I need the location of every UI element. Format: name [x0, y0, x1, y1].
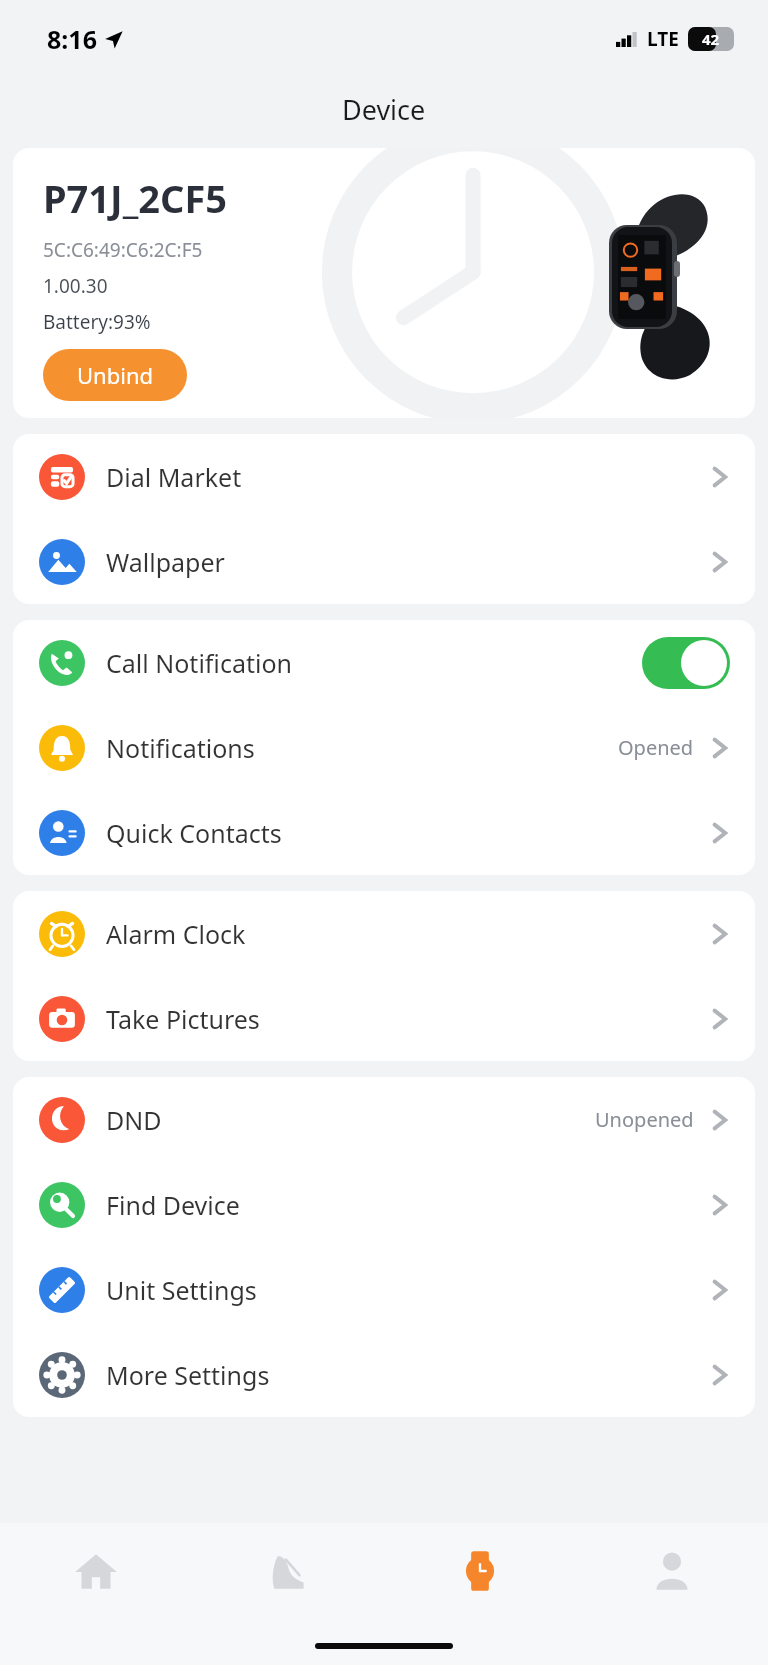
button[interactable]: Call Notification toggle	[642, 637, 730, 689]
button[interactable]: Profile	[576, 1523, 768, 1619]
button[interactable]: Take Pictures	[13, 976, 755, 1061]
button[interactable]: P71J_2CF5	[13, 148, 755, 418]
staticText: Alarm Clock	[106, 917, 246, 951]
staticText: Dial Market	[106, 460, 242, 494]
staticText: Notifications	[106, 731, 255, 765]
button[interactable]: Sport	[192, 1523, 384, 1619]
staticText: Take Pictures	[106, 1002, 260, 1036]
staticText: Battery:93%	[43, 309, 151, 335]
button[interactable]: Home	[0, 1523, 192, 1619]
staticText: Opened	[618, 734, 694, 761]
staticText: More Settings	[106, 1358, 270, 1392]
button[interactable]: More Settings	[13, 1332, 755, 1417]
staticText: Quick Contacts	[106, 816, 282, 850]
staticText: P71J_2CF5	[43, 172, 227, 224]
staticText: Unbind	[77, 360, 154, 390]
staticText: 1.00.30	[43, 273, 108, 299]
staticText: Unit Settings	[106, 1273, 257, 1307]
staticText: Unopened	[595, 1106, 694, 1133]
staticText: Call Notification	[106, 646, 292, 680]
staticText: 42	[702, 29, 720, 49]
staticText: LTE	[647, 26, 679, 52]
button[interactable]: Alarm Clock	[13, 891, 755, 976]
button[interactable]: Wallpaper	[13, 519, 755, 604]
button[interactable]: Unit Settings	[13, 1247, 755, 1332]
button[interactable]: Notifications	[13, 705, 755, 790]
button[interactable]: Unbind	[43, 349, 187, 401]
button[interactable]: Quick Contacts	[13, 790, 755, 875]
staticText: DND	[106, 1103, 162, 1137]
button[interactable]: Dial Market	[13, 434, 755, 519]
button[interactable]: Call Notification	[13, 620, 755, 705]
staticText: 5C:C6:49:C6:2C:F5	[43, 237, 203, 263]
staticText: Device	[342, 91, 426, 128]
staticText: Wallpaper	[106, 545, 225, 579]
staticText: 8:16	[47, 22, 97, 56]
button[interactable]: DND	[13, 1077, 755, 1162]
staticText: Find Device	[106, 1188, 240, 1222]
button[interactable]: Find Device	[13, 1162, 755, 1247]
button[interactable]: Device	[384, 1523, 576, 1619]
